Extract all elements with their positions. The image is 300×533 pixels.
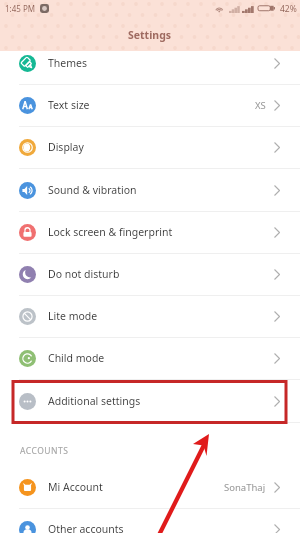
staticText: Text size	[48, 98, 255, 112]
staticText: ACCOUNTS	[20, 445, 69, 457]
staticText: Additional settings	[48, 394, 266, 408]
button[interactable]: Text size	[0, 84, 300, 127]
staticText: Mi Account	[48, 480, 224, 494]
staticText: XS	[255, 99, 266, 112]
staticText: 42%	[280, 3, 297, 15]
button[interactable]: Lite mode	[0, 295, 300, 338]
button[interactable]: Additional settings	[0, 380, 300, 423]
staticText: Display	[48, 140, 266, 154]
button[interactable]: Other accounts	[0, 508, 300, 533]
button[interactable]: Do not disturb	[0, 253, 300, 296]
button[interactable]: Child mode	[0, 337, 300, 380]
staticText: Do not disturb	[48, 267, 266, 281]
staticText: Lock screen & fingerprint	[48, 225, 266, 239]
button[interactable]: Display	[0, 126, 300, 169]
button[interactable]: Mi Account	[0, 466, 300, 509]
staticText: Sound & vibration	[48, 183, 266, 197]
staticText: Settings	[128, 28, 172, 42]
staticText: Lite mode	[48, 309, 266, 323]
button[interactable]: Lock screen & fingerprint	[0, 211, 300, 254]
staticText: 1:45 PM	[5, 3, 36, 14]
button[interactable]: Sound & vibration	[0, 169, 300, 212]
staticText: Child mode	[48, 351, 266, 365]
button[interactable]: Themes	[0, 42, 300, 85]
staticText: Themes	[48, 56, 266, 70]
staticText: Other accounts	[48, 522, 266, 533]
staticText: SonaThaj	[224, 481, 266, 494]
